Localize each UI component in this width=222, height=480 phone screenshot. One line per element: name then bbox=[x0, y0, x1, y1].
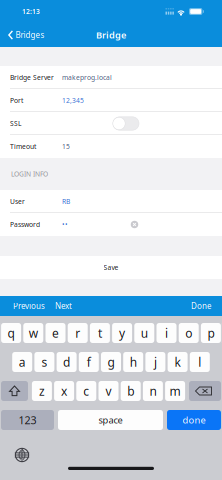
button[interactable]: g bbox=[101, 352, 121, 372]
button[interactable]: Password bbox=[0, 213, 222, 236]
button[interactable]: l bbox=[190, 352, 210, 372]
button[interactable]: Done bbox=[185, 297, 218, 315]
button[interactable]: f bbox=[79, 352, 99, 372]
button[interactable]: a bbox=[12, 352, 32, 372]
staticText: p bbox=[207, 325, 214, 341]
staticText: x bbox=[61, 383, 67, 399]
staticText: User bbox=[10, 197, 25, 206]
staticText: c bbox=[83, 383, 89, 399]
button[interactable]: k bbox=[168, 352, 188, 372]
button[interactable]: Bridge Server bbox=[0, 66, 222, 89]
button[interactable]: h bbox=[123, 352, 143, 372]
button[interactable]: Delete bbox=[189, 381, 221, 401]
staticText: Done bbox=[191, 301, 212, 311]
staticText: d bbox=[63, 354, 70, 370]
button[interactable]: j bbox=[145, 352, 165, 372]
staticText: Bridge bbox=[96, 29, 126, 41]
staticText: l bbox=[198, 354, 201, 370]
staticText: r bbox=[75, 325, 80, 341]
button[interactable]: Bridges bbox=[0, 26, 50, 44]
staticText: Previous bbox=[13, 301, 45, 311]
staticText: q bbox=[8, 325, 15, 341]
button[interactable]: r bbox=[68, 323, 88, 343]
staticText: s bbox=[41, 354, 47, 370]
staticText: b bbox=[127, 383, 134, 399]
staticText: k bbox=[175, 354, 181, 370]
button[interactable]: x bbox=[54, 381, 74, 401]
button[interactable]: q bbox=[1, 323, 21, 343]
staticText: space bbox=[98, 414, 122, 426]
staticText: 15 bbox=[62, 142, 70, 151]
button[interactable]: m bbox=[165, 381, 185, 401]
button[interactable]: Save bbox=[0, 256, 222, 279]
staticText: h bbox=[130, 354, 137, 370]
button[interactable]: s bbox=[34, 352, 54, 372]
staticText: t bbox=[98, 325, 102, 341]
staticText: Bridge Server bbox=[10, 73, 54, 82]
button[interactable]: y bbox=[112, 323, 132, 343]
button[interactable]: v bbox=[98, 381, 118, 401]
button[interactable]: b bbox=[121, 381, 141, 401]
staticText: Save bbox=[103, 263, 118, 272]
button[interactable]: Next keyboard bbox=[14, 447, 30, 463]
button[interactable]: done bbox=[167, 410, 221, 430]
staticText: Bridges bbox=[15, 30, 44, 40]
staticText: v bbox=[105, 383, 111, 399]
button[interactable]: o bbox=[179, 323, 199, 343]
button[interactable]: u bbox=[134, 323, 154, 343]
staticText: e bbox=[52, 325, 59, 341]
button[interactable]: space bbox=[58, 410, 163, 430]
button[interactable]: 123 bbox=[1, 410, 54, 430]
button[interactable]: Shift bbox=[1, 381, 28, 401]
staticText: g bbox=[107, 354, 114, 370]
button[interactable]: p bbox=[201, 323, 221, 343]
button[interactable]: Next bbox=[49, 297, 78, 315]
staticText: u bbox=[141, 325, 148, 341]
button[interactable]: e bbox=[45, 323, 65, 343]
button[interactable]: Previous bbox=[9, 297, 49, 315]
staticText: n bbox=[149, 383, 156, 399]
button[interactable]: z bbox=[32, 381, 52, 401]
staticText: o bbox=[185, 325, 192, 341]
button[interactable]: c bbox=[76, 381, 96, 401]
button[interactable]: i bbox=[156, 323, 176, 343]
staticText: w bbox=[29, 325, 38, 341]
staticText: 12,345 bbox=[62, 96, 84, 105]
staticText: SSL bbox=[10, 119, 21, 128]
button[interactable]: t bbox=[90, 323, 110, 343]
staticText: i bbox=[165, 325, 168, 341]
staticText: Timeout bbox=[10, 142, 36, 151]
staticText: makeprog.local bbox=[62, 73, 112, 82]
staticText: Next bbox=[55, 301, 72, 311]
button[interactable]: SSL bbox=[0, 112, 222, 135]
button[interactable]: Timeout bbox=[0, 135, 222, 158]
button[interactable]: w bbox=[23, 323, 43, 343]
staticText: RB bbox=[62, 197, 70, 206]
staticText: LOGIN INFO bbox=[11, 170, 48, 178]
staticText: f bbox=[87, 354, 91, 370]
staticText: z bbox=[39, 383, 45, 399]
staticText: m bbox=[170, 383, 181, 399]
staticText: •• bbox=[62, 220, 68, 229]
staticText: Port bbox=[10, 96, 23, 105]
staticText: y bbox=[119, 325, 125, 341]
staticText: a bbox=[19, 354, 26, 370]
button[interactable]: n bbox=[143, 381, 163, 401]
button[interactable]: Port bbox=[0, 89, 222, 112]
button[interactable]: User bbox=[0, 190, 222, 213]
staticText: done bbox=[182, 414, 205, 426]
staticText: 123 bbox=[18, 413, 36, 427]
button[interactable]: d bbox=[57, 352, 77, 372]
staticText: 12:13 bbox=[22, 7, 40, 16]
staticText: j bbox=[154, 354, 157, 370]
staticText: Password bbox=[10, 220, 40, 229]
